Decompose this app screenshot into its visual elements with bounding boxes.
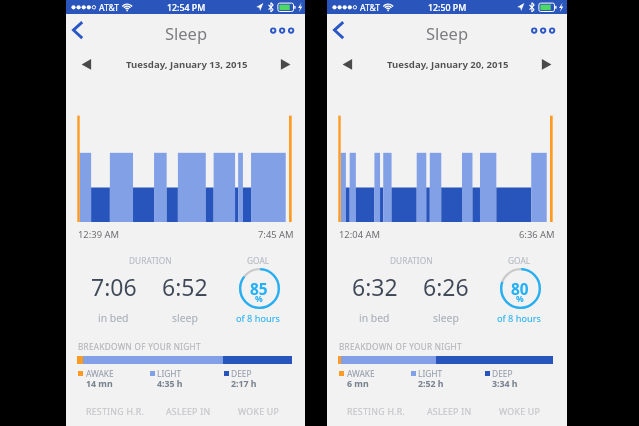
staticText: 3:34 h bbox=[492, 378, 518, 390]
staticText: 7:06 bbox=[91, 271, 137, 302]
staticText: 6:36 AM bbox=[519, 228, 555, 241]
staticText: LIGHT bbox=[157, 368, 182, 379]
button[interactable]: More options bbox=[529, 22, 562, 39]
staticText: AWAKE bbox=[86, 368, 114, 379]
staticText: sleep bbox=[433, 311, 459, 325]
staticText: 4:35 h bbox=[157, 378, 183, 390]
button[interactable]: Previous day bbox=[74, 53, 98, 76]
staticText: Tuesday, January 13, 2015 bbox=[126, 58, 248, 71]
staticText: GOAL bbox=[247, 255, 270, 266]
staticText: AT&T bbox=[360, 2, 381, 14]
staticText: of 8 hours bbox=[236, 312, 280, 325]
staticText: 12:39 AM bbox=[78, 228, 119, 241]
staticText: RESTING H.R. bbox=[347, 406, 406, 418]
staticText: 6:32 bbox=[352, 271, 398, 302]
staticText: 12:04 AM bbox=[339, 228, 380, 241]
staticText: in bed bbox=[359, 311, 390, 325]
staticText: of 8 hours bbox=[497, 312, 541, 325]
staticText: WOKE UP bbox=[238, 406, 280, 418]
staticText: ASLEEP IN bbox=[166, 406, 211, 418]
staticText: % bbox=[516, 293, 524, 305]
staticText: WOKE UP bbox=[499, 406, 541, 418]
staticText: DURATION bbox=[129, 255, 172, 266]
staticText: Sleep bbox=[426, 22, 469, 44]
staticText: sleep bbox=[172, 311, 198, 325]
staticText: RESTING H.R. bbox=[86, 406, 145, 418]
staticText: % bbox=[255, 293, 263, 305]
staticText: DEEP bbox=[231, 368, 252, 379]
staticText: 85 bbox=[250, 279, 268, 300]
staticText: LIGHT bbox=[418, 368, 443, 379]
button[interactable]: Next day bbox=[535, 53, 559, 76]
staticText: AT&T bbox=[99, 2, 120, 14]
staticText: 80 bbox=[511, 279, 529, 300]
staticText: 14 mn bbox=[86, 378, 113, 390]
staticText: GOAL bbox=[508, 255, 531, 266]
staticText: Sleep bbox=[165, 22, 208, 44]
button[interactable]: Back bbox=[67, 19, 91, 44]
button[interactable]: Previous day bbox=[335, 53, 359, 76]
staticText: 2:17 h bbox=[231, 378, 257, 390]
button[interactable]: Next day bbox=[274, 53, 298, 76]
staticText: 6 mn bbox=[347, 378, 369, 390]
staticText: 12:50 PM bbox=[428, 2, 467, 14]
staticText: DURATION bbox=[390, 255, 433, 266]
staticText: BREAKDOWN OF YOUR NIGHT bbox=[78, 341, 201, 352]
staticText: 6:52 bbox=[162, 271, 208, 302]
staticText: DEEP bbox=[492, 368, 513, 379]
staticText: 12:54 PM bbox=[167, 2, 206, 14]
staticText: AWAKE bbox=[347, 368, 375, 379]
button[interactable]: Back bbox=[328, 19, 352, 44]
staticText: BREAKDOWN OF YOUR NIGHT bbox=[339, 341, 462, 352]
button[interactable]: More options bbox=[268, 22, 301, 39]
staticText: 6:26 bbox=[423, 271, 469, 302]
staticText: 2:52 h bbox=[418, 378, 444, 390]
staticText: Tuesday, January 20, 2015 bbox=[387, 58, 509, 71]
staticText: 7:45 AM bbox=[258, 228, 294, 241]
staticText: ASLEEP IN bbox=[427, 406, 472, 418]
staticText: in bed bbox=[98, 311, 129, 325]
